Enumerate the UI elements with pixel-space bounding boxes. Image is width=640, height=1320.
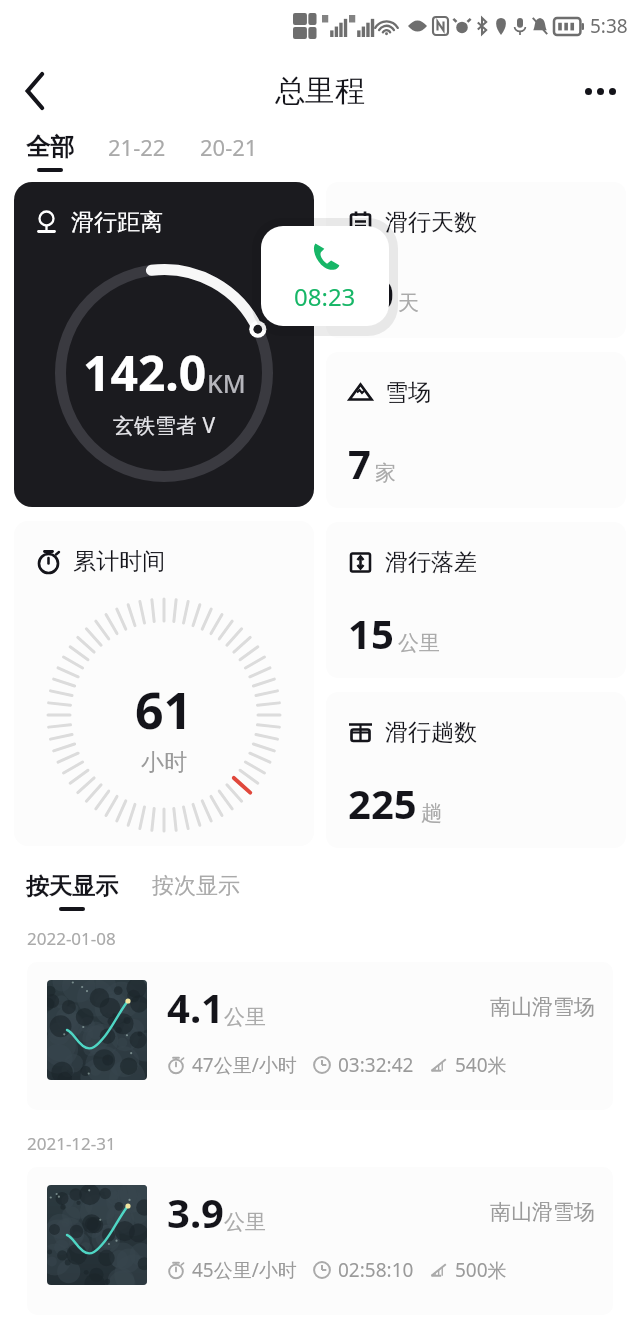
- staticText: 总里程: [275, 72, 365, 110]
- staticText: 21-22: [108, 132, 166, 162]
- staticText: 滑行天数: [385, 208, 477, 237]
- staticText: 南山滑雪场: [490, 994, 595, 1020]
- button[interactable]: 20-21: [196, 130, 262, 170]
- button[interactable]: 滑行距离: [14, 182, 314, 507]
- staticText: 公里: [224, 1004, 266, 1030]
- staticText: 20-21: [200, 132, 258, 162]
- staticText: 累计时间: [73, 547, 165, 576]
- staticText: 南山滑雪场: [490, 1199, 595, 1225]
- button[interactable]: 按天显示: [22, 870, 122, 913]
- button[interactable]: 雪场: [326, 352, 626, 508]
- button[interactable]: 21-22: [104, 130, 170, 170]
- staticText: 3.9: [167, 1185, 224, 1239]
- staticText: 全部: [26, 132, 74, 162]
- staticText: 225: [348, 776, 417, 830]
- staticText: 7: [348, 436, 371, 490]
- staticText: 500米: [455, 1257, 507, 1283]
- staticText: 20: [348, 266, 394, 320]
- staticText: 家: [375, 460, 396, 486]
- button[interactable]: More options: [572, 63, 628, 119]
- button[interactable]: 按次显示: [148, 870, 244, 908]
- button[interactable]: 全部: [22, 130, 78, 174]
- staticText: 滑行距离: [71, 208, 163, 237]
- staticText: 03:32:42: [338, 1052, 414, 1078]
- staticText: 4.1: [167, 980, 224, 1034]
- staticText: 天: [398, 290, 419, 316]
- staticText: 滑行趟数: [385, 718, 477, 747]
- staticText: 雪场: [385, 378, 431, 407]
- staticText: 02:58:10: [338, 1257, 414, 1283]
- staticText: 45公里/小时: [192, 1257, 297, 1283]
- button[interactable]: Back: [8, 63, 64, 119]
- button[interactable]: 滑行趟数: [326, 692, 626, 848]
- staticText: 540米: [455, 1052, 507, 1078]
- button[interactable]: 累计时间: [14, 521, 314, 846]
- button[interactable]: Ongoing call 08:23: [261, 226, 389, 326]
- staticText: KM: [207, 366, 246, 400]
- staticText: 142.0: [83, 340, 207, 405]
- button[interactable]: 滑行落差: [326, 522, 626, 678]
- button[interactable]: 4.1: [27, 962, 613, 1110]
- staticText: 滑行落差: [385, 548, 477, 577]
- staticText: 小时: [141, 748, 187, 777]
- staticText: 公里: [224, 1209, 266, 1235]
- staticText: 按天显示: [26, 872, 118, 901]
- staticText: 按次显示: [152, 872, 240, 900]
- staticText: 47公里/小时: [192, 1052, 297, 1078]
- staticText: 15: [348, 606, 394, 660]
- button[interactable]: 滑行天数: [326, 182, 626, 338]
- staticText: 08:23: [294, 280, 356, 313]
- staticText: 61: [135, 676, 193, 744]
- staticText: 2021-12-31: [27, 1132, 116, 1155]
- button[interactable]: 3.9: [27, 1167, 613, 1315]
- staticText: 玄铁雪者 V: [113, 411, 216, 440]
- staticText: 公里: [398, 630, 440, 656]
- staticText: 趟: [421, 800, 442, 826]
- staticText: 2022-01-08: [27, 927, 116, 950]
- staticText: 5:38: [590, 13, 628, 39]
